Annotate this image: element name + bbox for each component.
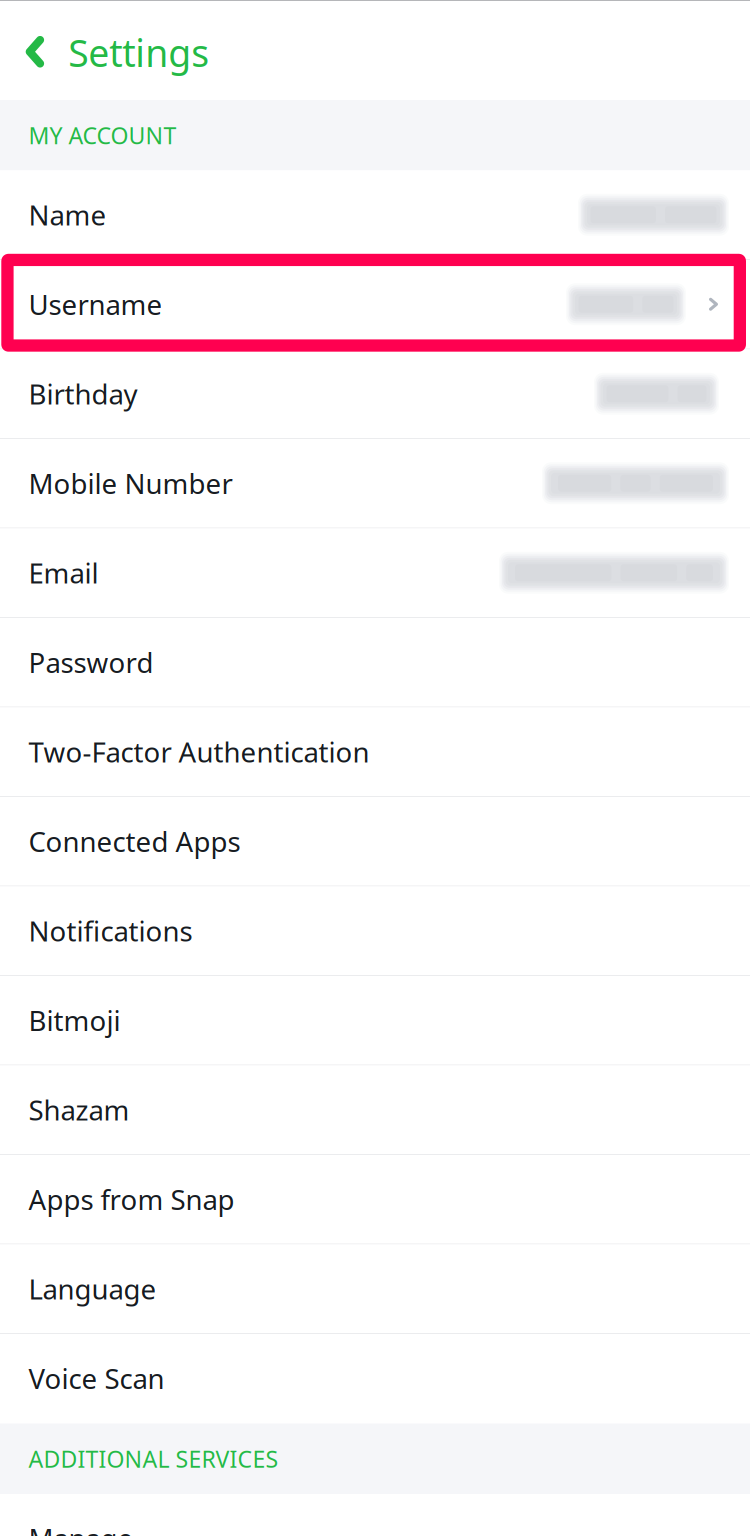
button[interactable]: Connected Apps (0, 797, 750, 886)
staticText: Notifications (28, 912, 192, 950)
button[interactable]: Mobile Number (0, 439, 750, 528)
staticText: Mobile Number (28, 464, 232, 502)
staticText: Birthday (28, 375, 137, 413)
staticText: Manage (28, 1519, 133, 1536)
staticText: ADDITIONAL SERVICES (28, 1443, 278, 1474)
button[interactable]: Two-Factor Authentication (0, 707, 750, 797)
staticText: Settings (68, 28, 209, 77)
button[interactable]: Bitmoji (0, 976, 750, 1065)
staticText: Name (28, 196, 106, 234)
button[interactable]: Language (0, 1244, 750, 1334)
staticText: Bitmoji (28, 1001, 120, 1039)
staticText: Username (28, 285, 162, 323)
button[interactable]: Email (0, 528, 750, 618)
button[interactable]: Manage (0, 1494, 750, 1536)
button[interactable]: Settings (0, 0, 229, 100)
staticText: Voice Scan (28, 1359, 164, 1397)
staticText: Connected Apps (28, 822, 240, 860)
staticText: Language (28, 1270, 156, 1308)
staticText: Email (28, 554, 98, 592)
button[interactable]: Shazam (0, 1065, 750, 1155)
staticText: MY ACCOUNT (28, 119, 176, 151)
button[interactable]: Birthday (0, 349, 750, 439)
button[interactable]: Username (0, 260, 750, 349)
button[interactable]: Voice Scan (0, 1334, 750, 1423)
button[interactable]: Password (0, 618, 750, 707)
staticText: Apps from Snap (28, 1180, 234, 1218)
button[interactable]: Notifications (0, 886, 750, 976)
staticText: Two-Factor Authentication (28, 733, 369, 771)
button[interactable]: Apps from Snap (0, 1155, 750, 1244)
staticText: Password (28, 643, 153, 681)
button[interactable]: Name (0, 170, 750, 260)
staticText: Shazam (28, 1091, 129, 1129)
